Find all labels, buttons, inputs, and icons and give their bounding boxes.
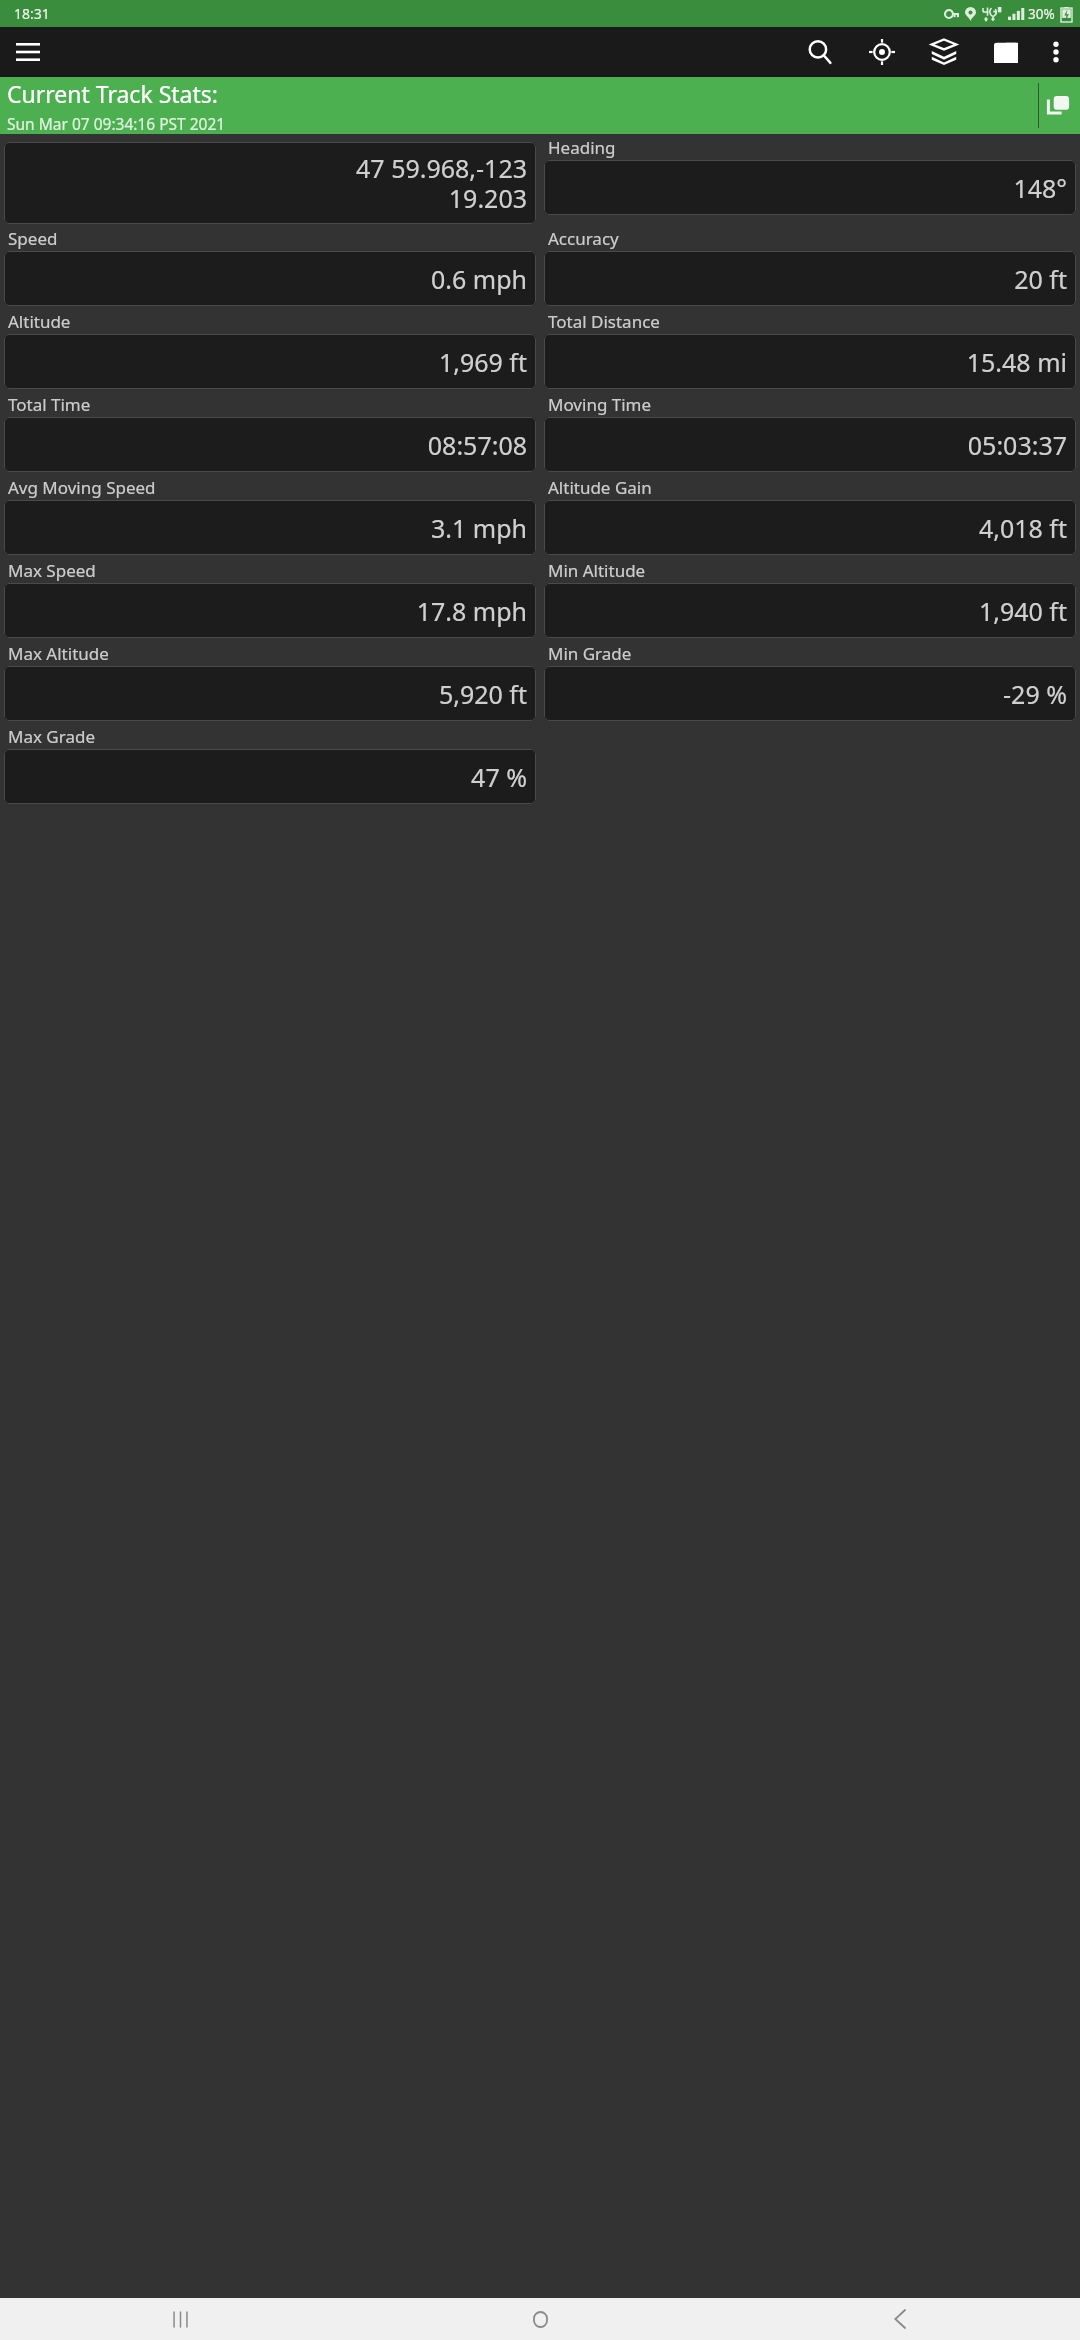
button[interactable]: 1,969 ft [4,334,536,389]
staticText: 30% [1028,5,1055,23]
staticText: Current Track Stats: [7,78,218,109]
staticText: 47 59.968,-123 19.203 [13,151,527,216]
staticText: 4,018 ft [553,511,1067,545]
staticText: Max Grade [8,725,96,748]
staticText: 3.1 mph [13,511,527,545]
button[interactable]: Recent apps [0,2298,360,2340]
button[interactable]: Back [720,2298,1080,2340]
button[interactable]: 15.48 mi [544,334,1076,389]
staticText: Min Grade [548,642,632,665]
button[interactable]: My location [860,30,904,74]
button[interactable]: More options [1034,30,1078,74]
staticText: 1,969 ft [13,345,527,379]
button[interactable]: 0.6 mph [4,251,536,306]
staticText: Speed [8,227,58,250]
staticText: Min Altitude [548,559,646,582]
button[interactable]: 17.8 mph [4,583,536,638]
button[interactable]: 4,018 ft [544,500,1076,555]
button[interactable]: 20 ft [544,251,1076,306]
button[interactable]: 47 % [4,749,536,804]
staticText: Accuracy [548,227,619,250]
button[interactable]: -29 % [544,666,1076,721]
button[interactable]: 3.1 mph [4,500,536,555]
staticText: 1,940 ft [553,594,1067,628]
button[interactable]: 1,940 ft [544,583,1076,638]
button[interactable]: Layers [922,30,966,74]
button[interactable]: 148° [544,160,1076,215]
staticText: Moving Time [548,393,652,416]
staticText: -29 % [553,677,1067,711]
staticText: 15.48 mi [553,345,1067,379]
staticText: Altitude [8,310,71,333]
button[interactable]: Search [798,30,842,74]
button[interactable]: 08:57:08 [4,417,536,472]
staticText: 18:31 [14,4,50,23]
staticText: 20 ft [553,262,1067,296]
button[interactable]: 5,920 ft [4,666,536,721]
button[interactable]: Files [984,30,1028,74]
staticText: Max Speed [8,559,96,582]
staticText: 05:03:37 [553,428,1067,462]
staticText: 47 % [13,760,527,794]
staticText: Total Time [8,393,91,416]
staticText: 0.6 mph [13,262,527,296]
staticText: Total Distance [548,310,660,333]
button[interactable]: Copy stats [1040,87,1078,125]
button[interactable]: 05:03:37 [544,417,1076,472]
button[interactable]: 47 59.968,-123 19.203 [4,142,536,224]
staticText: Max Altitude [8,642,109,665]
staticText: 5,920 ft [13,677,527,711]
staticText: 08:57:08 [13,428,527,462]
staticText: 17.8 mph [13,594,527,628]
button[interactable]: Menu [4,28,52,76]
staticText: Heading [548,136,616,159]
button[interactable]: Home [360,2298,720,2340]
staticText: 148° [553,171,1067,205]
staticText: Altitude Gain [548,476,652,499]
staticText: Sun Mar 07 09:34:16 PST 2021 [7,113,226,134]
staticText: Avg Moving Speed [8,476,156,499]
